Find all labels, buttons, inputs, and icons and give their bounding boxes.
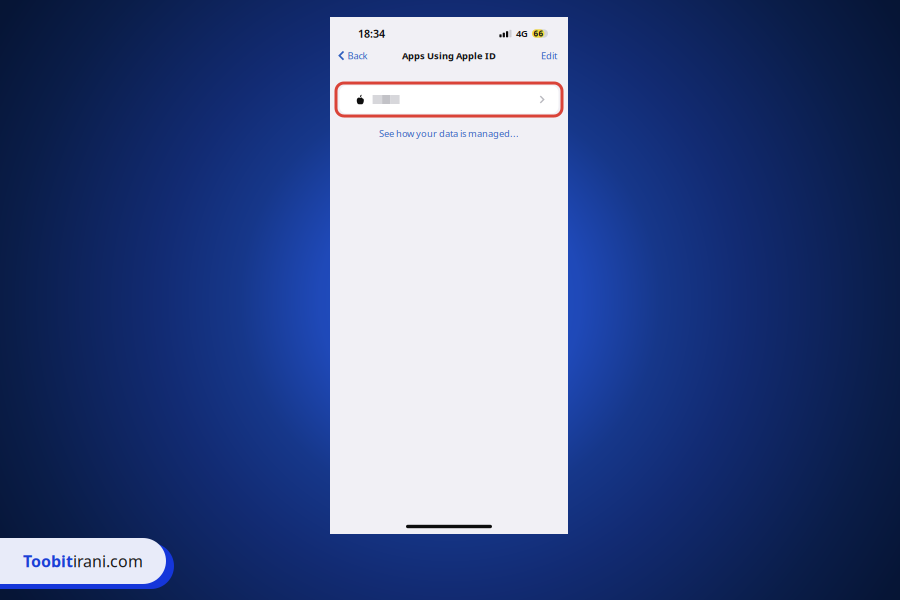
staticText: Toobit	[23, 550, 73, 572]
staticText: 18:34	[358, 26, 385, 41]
staticText: 66	[533, 28, 543, 39]
staticText: 4G	[516, 27, 528, 40]
button[interactable]: Back	[330, 48, 373, 64]
staticText: Back	[347, 49, 367, 62]
staticText: irani.com	[73, 550, 143, 572]
staticText: See how your data is managed...	[379, 127, 519, 140]
button[interactable]: Toobit	[0, 533, 174, 589]
staticText: Edit	[541, 49, 557, 62]
button[interactable]	[339, 85, 558, 113]
button[interactable]: Edit	[531, 48, 568, 64]
staticText: Apps Using Apple ID	[402, 49, 496, 62]
button[interactable]: See how your data is managed...	[379, 127, 519, 140]
